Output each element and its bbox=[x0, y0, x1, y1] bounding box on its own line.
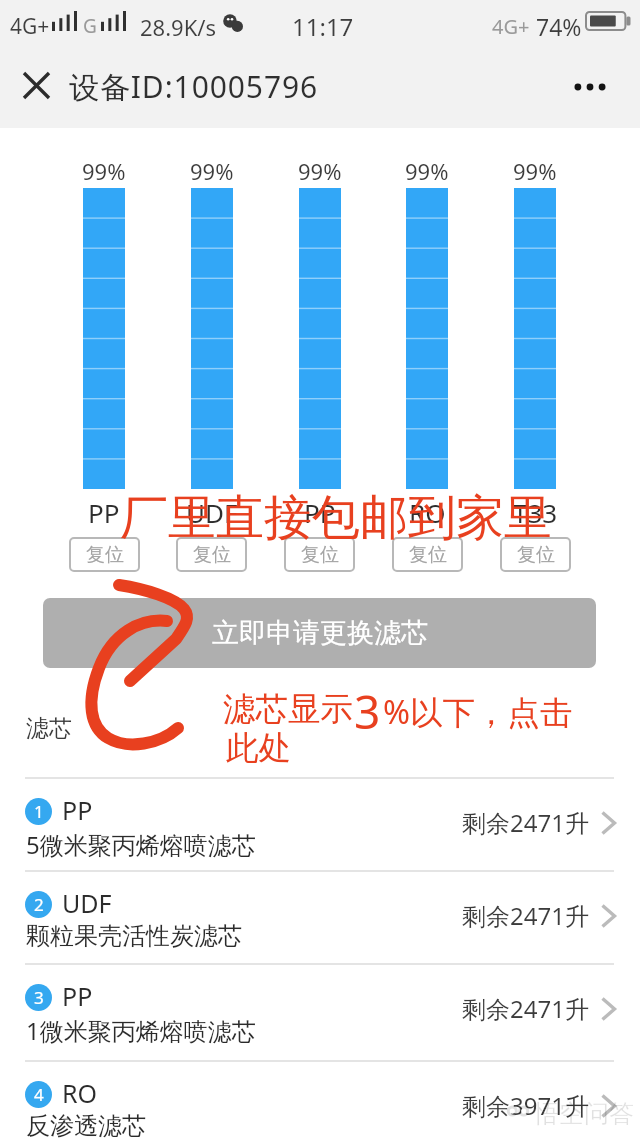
staticText: G bbox=[83, 13, 97, 39]
staticText: UDF bbox=[186, 495, 238, 530]
staticText: 滤芯 bbox=[26, 714, 72, 743]
staticText: 99% bbox=[405, 156, 449, 186]
staticText: %以下，点击 bbox=[383, 689, 573, 733]
staticText: 复位 bbox=[409, 543, 447, 567]
staticText: 剩余3971升 bbox=[462, 1089, 589, 1122]
staticText: 1微米聚丙烯熔喷滤芯 bbox=[26, 1014, 256, 1047]
staticText: 悟空问答 bbox=[534, 1098, 634, 1129]
staticText: 复位 bbox=[517, 543, 555, 567]
staticText: 颗粒果壳活性炭滤芯 bbox=[26, 921, 242, 951]
staticText: 99% bbox=[298, 156, 342, 186]
staticText: 厂里直接包邮到家里 bbox=[120, 488, 552, 548]
button[interactable]: 复位 bbox=[392, 537, 463, 572]
staticText: 设备ID:10005796 bbox=[69, 66, 319, 107]
staticText: 4G+ bbox=[492, 13, 530, 40]
staticText: 4G+ bbox=[10, 12, 50, 41]
staticText: RO bbox=[409, 495, 446, 530]
button[interactable]: 复位 bbox=[176, 537, 247, 572]
button[interactable]: 复位 bbox=[69, 537, 140, 572]
staticText: RO bbox=[62, 1076, 98, 1110]
staticText: 此处 bbox=[226, 728, 291, 769]
staticText: 11:17 bbox=[292, 10, 354, 43]
button[interactable]: 立即申请更换滤芯 bbox=[43, 598, 596, 668]
staticText: 5微米聚丙烯熔喷滤芯 bbox=[26, 828, 256, 861]
button[interactable]: Close bbox=[12, 61, 60, 109]
button[interactable]: 1 bbox=[0, 778, 640, 869]
staticText: 74% bbox=[536, 11, 582, 42]
button[interactable]: 2 bbox=[0, 871, 640, 962]
staticText: 2 bbox=[34, 893, 44, 916]
staticText: PP bbox=[304, 495, 336, 530]
button[interactable]: 复位 bbox=[284, 537, 355, 572]
staticText: T33 bbox=[513, 495, 558, 530]
staticText: 立即申请更换滤芯 bbox=[212, 616, 428, 650]
staticText: 28.9K/s bbox=[140, 12, 216, 42]
staticText: 剩余2471升 bbox=[462, 899, 589, 932]
staticText: 剩余2471升 bbox=[462, 992, 589, 1025]
button[interactable]: 4 bbox=[0, 1061, 640, 1138]
button[interactable]: 3 bbox=[0, 964, 640, 1055]
staticText: UDF bbox=[62, 886, 112, 920]
staticText: PP bbox=[62, 793, 93, 827]
button[interactable]: 复位 bbox=[500, 537, 571, 572]
staticText: 滤芯显示 bbox=[223, 689, 353, 730]
staticText: 复位 bbox=[86, 543, 124, 567]
staticText: PP bbox=[62, 979, 93, 1013]
staticText: 99% bbox=[190, 156, 234, 186]
staticText: 复位 bbox=[301, 543, 339, 567]
staticText: 99% bbox=[82, 156, 126, 186]
button[interactable]: More options bbox=[564, 61, 616, 113]
staticText: 99% bbox=[513, 156, 557, 186]
staticText: 复位 bbox=[193, 543, 231, 567]
staticText: 反渗透滤芯 bbox=[26, 1111, 146, 1138]
staticText: PP bbox=[88, 495, 120, 530]
staticText: 剩余2471升 bbox=[462, 806, 589, 839]
staticText: 3 bbox=[34, 986, 44, 1009]
staticText: 1 bbox=[34, 800, 44, 823]
staticText: 3 bbox=[354, 680, 381, 743]
staticText: 4 bbox=[34, 1083, 44, 1106]
